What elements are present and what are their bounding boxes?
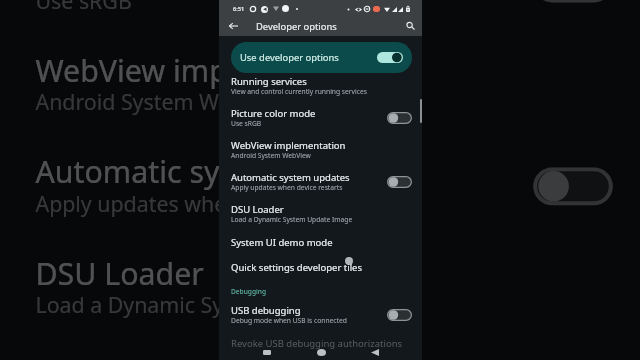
button[interactable]: Picture color mode [0,0,640,34]
staticText: Use sRGB [35,0,134,15]
button[interactable]: System UI demo mode [0,338,640,360]
button[interactable]: Back [369,346,381,358]
button[interactable]: Home [315,346,327,358]
staticText: Use developer options [240,51,339,64]
staticText: DSU Loader [35,253,205,294]
staticText: USB debugging [231,304,301,317]
button[interactable]: Picture color mode [219,102,422,134]
staticText: Apply updates when device restarts [231,183,343,192]
staticText: Debugging [231,287,267,296]
button[interactable]: Automatic system updates [0,136,640,237]
button[interactable]: Quick settings developer tiles [219,255,422,280]
staticText: Apply updates when device restarts [35,189,393,218]
button[interactable]: Recents [261,346,273,358]
button[interactable]: System UI demo mode [219,230,422,255]
button[interactable]: Back [225,18,241,34]
button[interactable]: WebView implementation [0,34,640,136]
button[interactable]: Search [402,18,418,34]
button[interactable]: WebView implementation [219,134,422,166]
button[interactable]: Revoke USB debugging authorizations [219,331,422,356]
staticText: WebView implementation [231,139,346,152]
staticText: Running services [231,75,307,88]
staticText: Android System WebView [231,151,311,160]
button[interactable]: Automatic system updates [219,166,422,198]
staticText: System UI demo mode [35,357,361,360]
staticText: Load a Dynamic System Update Image [231,215,353,224]
button[interactable]: DSU Loader [219,198,422,230]
staticText: System UI demo mode [231,236,333,249]
staticText: 6:51 [233,5,245,13]
button[interactable]: DSU Loader [0,237,640,338]
button[interactable]: Use developer options [231,42,412,73]
staticText: DSU Loader [231,203,284,216]
staticText: Debug mode when USB is connected [231,316,347,325]
button[interactable]: Running services [219,70,422,102]
button[interactable]: USB debugging [219,299,422,331]
staticText: View and control currently running servi… [231,87,367,96]
staticText: Use sRGB [231,119,262,128]
staticText: Quick settings developer tiles [231,261,363,274]
staticText: Revoke USB debugging authorizations [231,337,403,350]
staticText: Automatic system updates [231,171,350,184]
staticText: Android System WebView [35,88,291,117]
staticText: Developer options [256,20,337,33]
staticText: WebView implementation [35,50,402,91]
staticText: Automatic system updates [35,151,415,193]
staticText: Load a Dynamic System Update Image [35,291,425,319]
staticText: Picture color mode [231,107,316,120]
